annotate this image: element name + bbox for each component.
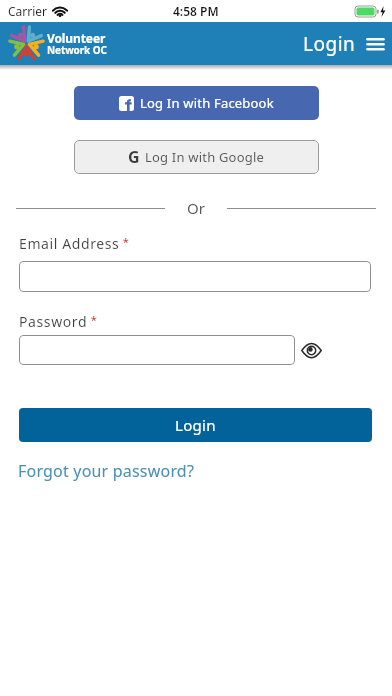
button[interactable] [299,339,323,361]
button[interactable]: Login [303,31,356,57]
staticText: Or [187,198,205,218]
staticText: * [120,234,129,249]
staticText: Email Address [19,234,120,253]
button[interactable]: Log In with Facebook [74,86,319,120]
staticText: Login [303,31,356,57]
staticText: * [88,312,97,327]
staticText: Carrier [8,3,48,19]
button[interactable] [365,34,385,54]
button[interactable]: Login [19,408,372,442]
staticText: Forgot your password? [18,460,195,482]
button[interactable] [19,335,295,365]
staticText: Log In with Facebook [140,94,274,112]
staticText: 4:58 PM [173,3,219,19]
staticText: Log In with Google [145,148,265,166]
staticText: Volunteer Network OC [47,30,107,57]
button[interactable]: Forgot your password? [18,460,195,482]
button[interactable] [19,261,371,292]
button[interactable]: G [74,140,319,174]
staticText: G [128,146,140,168]
staticText: Password [19,312,88,331]
staticText: Login [175,415,216,435]
